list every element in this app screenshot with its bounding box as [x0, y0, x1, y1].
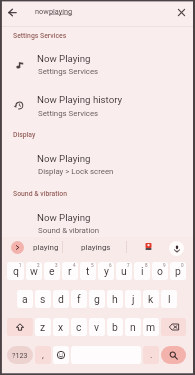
- staticText: m: [146, 321, 156, 333]
- button[interactable]: x: [53, 318, 69, 336]
- staticText: Sound & vibration: [38, 226, 100, 235]
- button[interactable]: g: [89, 290, 105, 308]
- button[interactable]: h: [107, 290, 123, 308]
- button[interactable]: b: [107, 318, 123, 336]
- button[interactable]: d: [53, 290, 69, 308]
- button[interactable]: q: [7, 262, 24, 280]
- button[interactable]: l: [161, 290, 177, 308]
- staticText: Settings Services: [38, 67, 99, 76]
- button[interactable]: Search: [161, 346, 186, 364]
- button[interactable]: ,: [35, 346, 51, 364]
- button[interactable]: [0, 144, 195, 177]
- button[interactable]: n: [125, 318, 141, 336]
- staticText: Settings Services: [13, 32, 67, 40]
- staticText: u: [121, 265, 127, 277]
- staticText: l: [168, 293, 171, 305]
- staticText: ?123: [12, 351, 28, 359]
- staticText: v: [94, 321, 100, 333]
- staticText: w: [30, 265, 38, 277]
- staticText: b: [112, 321, 118, 333]
- staticText: e: [49, 265, 55, 277]
- button[interactable]: Shift: [7, 318, 33, 336]
- staticText: z: [40, 321, 46, 333]
- button[interactable]: Backspace: [161, 318, 186, 336]
- staticText: .: [150, 350, 153, 361]
- staticText: d: [58, 293, 64, 305]
- staticText: q: [13, 265, 19, 277]
- staticText: y: [104, 265, 109, 277]
- staticText: 9: [163, 263, 166, 268]
- staticText: Now Playing: [37, 212, 91, 223]
- staticText: Display: [13, 131, 36, 139]
- button[interactable]: [28, 238, 62, 256]
- staticText: n: [130, 321, 136, 333]
- staticText: o: [157, 265, 163, 277]
- button[interactable]: e: [44, 262, 60, 280]
- button[interactable]: Clear query: [173, 4, 189, 20]
- button[interactable]: [64, 238, 124, 256]
- button[interactable]: Navigate up: [4, 4, 21, 21]
- button[interactable]: p: [170, 262, 186, 280]
- button[interactable]: Clipboard: [141, 239, 155, 253]
- staticText: Settings Services: [38, 109, 99, 118]
- staticText: Now Playing: [37, 153, 91, 164]
- staticText: s: [40, 293, 46, 305]
- staticText: c: [76, 321, 82, 333]
- button[interactable]: j: [125, 290, 141, 308]
- button[interactable]: z: [35, 318, 51, 336]
- staticText: Now Playing history: [37, 94, 123, 105]
- button[interactable]: [30, 2, 170, 24]
- button[interactable]: f: [71, 290, 87, 308]
- button[interactable]: ?123: [7, 346, 33, 364]
- button[interactable]: w: [26, 262, 42, 280]
- button[interactable]: v: [89, 318, 105, 336]
- staticText: i: [141, 265, 144, 277]
- button[interactable]: r: [62, 262, 78, 280]
- staticText: Sound & vibration: [13, 190, 68, 198]
- button[interactable]: a: [17, 290, 33, 308]
- staticText: 0: [181, 263, 184, 268]
- button[interactable]: c: [71, 318, 87, 336]
- staticText: now: [35, 7, 49, 16]
- button[interactable]: Voice input: [169, 241, 184, 256]
- staticText: Display > Lock screen: [38, 167, 114, 176]
- staticText: f: [77, 293, 81, 305]
- staticText: k: [148, 293, 154, 305]
- staticText: h: [112, 293, 118, 305]
- staticText: Now Playing: [37, 53, 91, 64]
- button[interactable]: [0, 203, 195, 236]
- staticText: 1: [19, 263, 22, 268]
- staticText: playing: [33, 243, 59, 252]
- staticText: t: [86, 265, 90, 277]
- staticText: r: [68, 265, 72, 277]
- button[interactable]: .: [143, 346, 159, 364]
- staticText: g: [94, 293, 100, 305]
- staticText: j: [132, 293, 135, 305]
- staticText: 2: [37, 263, 40, 268]
- staticText: 6: [109, 263, 112, 268]
- staticText: 5: [91, 263, 94, 268]
- staticText: 8: [145, 263, 148, 268]
- button[interactable]: [0, 44, 195, 77]
- button[interactable]: y: [98, 262, 114, 280]
- button[interactable]: More suggestions: [11, 241, 24, 254]
- staticText: 3: [55, 263, 58, 268]
- staticText: playing: [49, 7, 73, 16]
- button[interactable]: [0, 85, 195, 118]
- button[interactable]: o: [152, 262, 168, 280]
- button[interactable]: t: [80, 262, 96, 280]
- staticText: p: [175, 265, 181, 277]
- button[interactable]: s: [35, 290, 51, 308]
- button[interactable]: m: [143, 318, 159, 336]
- button[interactable]: u: [116, 262, 132, 280]
- staticText: a: [22, 293, 28, 305]
- staticText: playings: [81, 243, 111, 252]
- staticText: 4: [73, 263, 76, 268]
- staticText: 7: [127, 263, 130, 268]
- staticText: x: [58, 321, 64, 333]
- button[interactable]: k: [143, 290, 159, 308]
- staticText: ,: [42, 350, 44, 361]
- button[interactable]: i: [134, 262, 150, 280]
- button[interactable]: Emoji: [53, 346, 69, 364]
